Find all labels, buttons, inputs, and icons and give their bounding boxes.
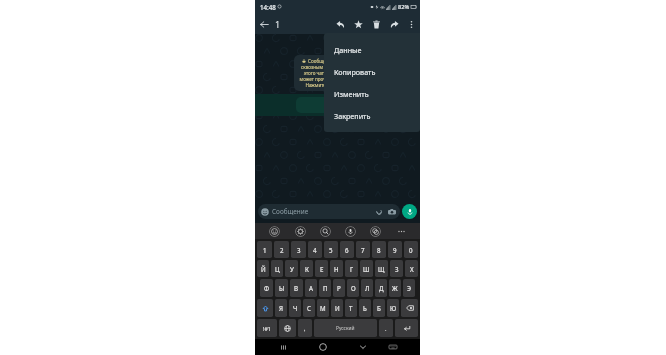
button[interactable]: Reply: [331, 15, 349, 33]
button[interactable]: 8: [372, 241, 386, 258]
button[interactable]: Translate: [369, 225, 381, 237]
button[interactable]: Ю: [387, 299, 399, 317]
button[interactable]: Back: [255, 15, 273, 33]
button[interactable]: 6: [340, 241, 354, 258]
button[interactable]: Л: [361, 279, 373, 297]
button[interactable]: Star: [349, 15, 367, 33]
button[interactable]: Ф: [260, 279, 273, 297]
staticText: Х: [410, 265, 414, 273]
staticText: 2: [280, 246, 284, 254]
staticText: Ю: [390, 304, 397, 312]
button[interactable]: Recents: [276, 340, 290, 354]
button[interactable]: Й: [257, 260, 269, 277]
button[interactable]: Ж: [389, 279, 401, 297]
button[interactable]: Изменить: [324, 83, 420, 105]
button[interactable]: Сообщения и звонки защищены: [294, 55, 389, 91]
button[interactable]: More options: [403, 16, 419, 32]
button[interactable]: Б: [373, 299, 385, 317]
button[interactable]: Key: [401, 299, 418, 317]
button[interactable]: Voice message: [402, 204, 417, 219]
button[interactable]: У: [285, 260, 298, 277]
staticText: .: [385, 325, 387, 332]
button[interactable]: Н: [330, 260, 343, 277]
button[interactable]: [296, 97, 416, 113]
button[interactable]: .: [379, 319, 393, 337]
button[interactable]: 9: [388, 241, 402, 258]
button[interactable]: 3: [291, 241, 306, 258]
button[interactable]: Key: [257, 299, 273, 317]
button[interactable]: О: [347, 279, 359, 297]
staticText: ,: [304, 325, 306, 332]
button[interactable]: Forward: [385, 15, 403, 33]
button[interactable]: Я: [275, 299, 287, 317]
staticText: 8: [377, 246, 381, 254]
button[interactable]: Т: [345, 299, 357, 317]
button[interactable]: Key: [279, 319, 296, 337]
button[interactable]: More: [395, 225, 407, 237]
button[interactable]: Э: [403, 279, 415, 297]
button[interactable]: 0: [404, 241, 418, 258]
button[interactable]: М: [317, 299, 329, 317]
staticText: Изменить: [334, 89, 369, 99]
button[interactable]: В: [290, 279, 303, 297]
staticText: М: [320, 304, 326, 312]
button[interactable]: Settings: [294, 225, 306, 237]
staticText: 4: [313, 246, 317, 254]
staticText: А: [309, 284, 313, 292]
button[interactable]: З: [390, 260, 403, 277]
button[interactable]: !#1: [257, 319, 277, 337]
button[interactable]: 7: [356, 241, 370, 258]
staticText: Б: [377, 304, 381, 312]
button[interactable]: Г: [345, 260, 358, 277]
button[interactable]: К: [300, 260, 313, 277]
button[interactable]: Русский: [314, 319, 377, 337]
button[interactable]: И: [331, 299, 343, 317]
button[interactable]: Х: [405, 260, 418, 277]
button[interactable]: Keyboard switch: [386, 340, 400, 354]
button[interactable]: Home: [316, 340, 330, 354]
staticText: С: [307, 304, 311, 312]
button[interactable]: Ь: [359, 299, 371, 317]
staticText: 1: [275, 18, 281, 30]
button[interactable]: Д: [375, 279, 387, 297]
staticText: Ц: [275, 265, 280, 273]
button[interactable]: Сообщение: [258, 204, 400, 219]
staticText: Э: [407, 284, 412, 292]
button[interactable]: Данные: [324, 39, 420, 61]
staticText: Я: [279, 304, 283, 312]
staticText: !#1: [263, 325, 271, 332]
button[interactable]: Key: [395, 319, 418, 337]
staticText: Русский: [336, 325, 355, 332]
staticText: Сообщения и звонки защищены: [308, 58, 381, 64]
button[interactable]: 1: [257, 241, 272, 258]
button[interactable]: Копировать: [324, 61, 420, 83]
button[interactable]: Закрепить: [324, 105, 420, 127]
button[interactable]: ,: [298, 319, 312, 337]
staticText: 6: [345, 246, 349, 254]
button[interactable]: Emoji: [268, 225, 280, 237]
button[interactable]: А: [305, 279, 317, 297]
button[interactable]: С: [303, 299, 315, 317]
staticText: Ы: [279, 284, 285, 292]
button[interactable]: Search: [319, 225, 331, 237]
staticText: Н: [334, 265, 339, 273]
button[interactable]: Delete: [367, 15, 385, 33]
button[interactable]: Е: [315, 260, 328, 277]
staticText: 9: [393, 246, 397, 254]
button[interactable]: Р: [333, 279, 345, 297]
staticText: 5: [329, 246, 333, 254]
button[interactable]: Ш: [360, 260, 373, 277]
button[interactable]: 4: [308, 241, 322, 258]
button[interactable]: 2: [274, 241, 289, 258]
staticText: Сегодня: [335, 42, 356, 49]
button[interactable]: 5: [324, 241, 338, 258]
button[interactable]: П: [319, 279, 331, 297]
staticText: Ч: [293, 304, 298, 312]
button[interactable]: Ч: [289, 299, 301, 317]
button[interactable]: Ц: [271, 260, 283, 277]
button[interactable]: Hide keyboard: [356, 340, 370, 354]
button[interactable]: Щ: [375, 260, 388, 277]
button[interactable]: Ы: [275, 279, 288, 297]
button[interactable]: Voice input: [344, 225, 356, 237]
staticText: З: [395, 265, 399, 273]
